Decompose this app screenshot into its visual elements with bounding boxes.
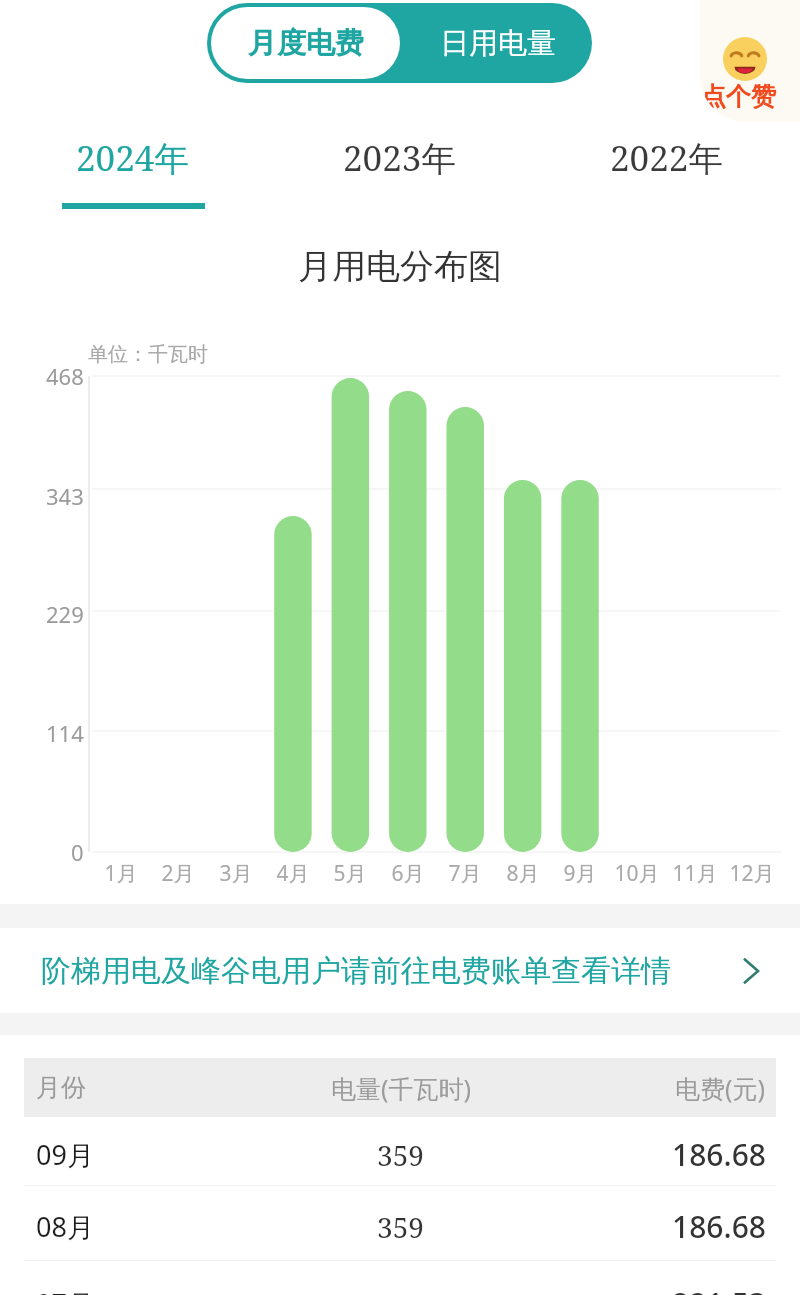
button[interactable]: 2024年 <box>0 100 266 148</box>
staticText: 343 <box>46 481 84 511</box>
staticText: 6月 <box>391 859 425 888</box>
staticText: 5月 <box>333 859 367 888</box>
staticText: 1月 <box>104 859 138 888</box>
staticText: 359 <box>260 1208 541 1246</box>
button[interactable]: 阶梯用电及峰谷电用户请前往电费账单查看详情 <box>0 928 800 1013</box>
staticText: 7月 <box>448 859 482 888</box>
staticText: 月用电分布图 <box>298 245 502 288</box>
staticText: 阶梯用电及峰谷电用户请前往电费账单查看详情 <box>41 952 671 990</box>
button[interactable]: 2023年 <box>266 100 533 148</box>
staticText: 单位：千瓦时 <box>88 342 208 367</box>
staticText: 114 <box>46 718 84 748</box>
staticText: 电费(元) <box>541 1071 765 1105</box>
staticText: 186.68 <box>541 1206 766 1247</box>
staticText: 月度电费 <box>248 25 364 62</box>
button[interactable]: 点个赞 <box>700 0 800 122</box>
staticText: 359 <box>260 1136 541 1174</box>
staticText: 221.53 <box>541 1283 766 1295</box>
button[interactable]: 月度电费 <box>211 7 400 79</box>
staticText: 2月 <box>161 859 195 888</box>
staticText: 4月 <box>276 859 310 888</box>
staticText: 11月 <box>672 859 718 888</box>
staticText: 8月 <box>506 859 540 888</box>
staticText: 186.68 <box>541 1134 766 1175</box>
staticText: 2023年 <box>343 134 457 182</box>
button[interactable]: 07月 <box>0 1261 800 1295</box>
button[interactable]: 2022年 <box>533 100 800 148</box>
button[interactable]: 09月 <box>0 1117 800 1185</box>
staticText: 08月 <box>36 1208 260 1245</box>
staticText: 10月 <box>614 859 660 888</box>
staticText: 468 <box>46 361 84 391</box>
button[interactable]: 08月 <box>0 1186 800 1260</box>
staticText: 日用电量 <box>440 25 556 62</box>
staticText: 电量(千瓦时) <box>261 1071 541 1105</box>
staticText: 2024年 <box>76 134 190 182</box>
staticText: 9月 <box>563 859 597 888</box>
staticText: 229 <box>46 599 84 629</box>
staticText: 月份 <box>36 1072 261 1103</box>
staticText: 07月 <box>36 1285 260 1295</box>
staticText: 2022年 <box>610 134 724 182</box>
staticText: 点个赞 <box>701 81 776 112</box>
staticText: 09月 <box>36 1136 260 1173</box>
staticText: 3月 <box>219 859 253 888</box>
staticText: 12月 <box>729 859 775 888</box>
staticText: 0 <box>71 837 84 867</box>
button[interactable]: 日用电量 <box>404 3 592 83</box>
